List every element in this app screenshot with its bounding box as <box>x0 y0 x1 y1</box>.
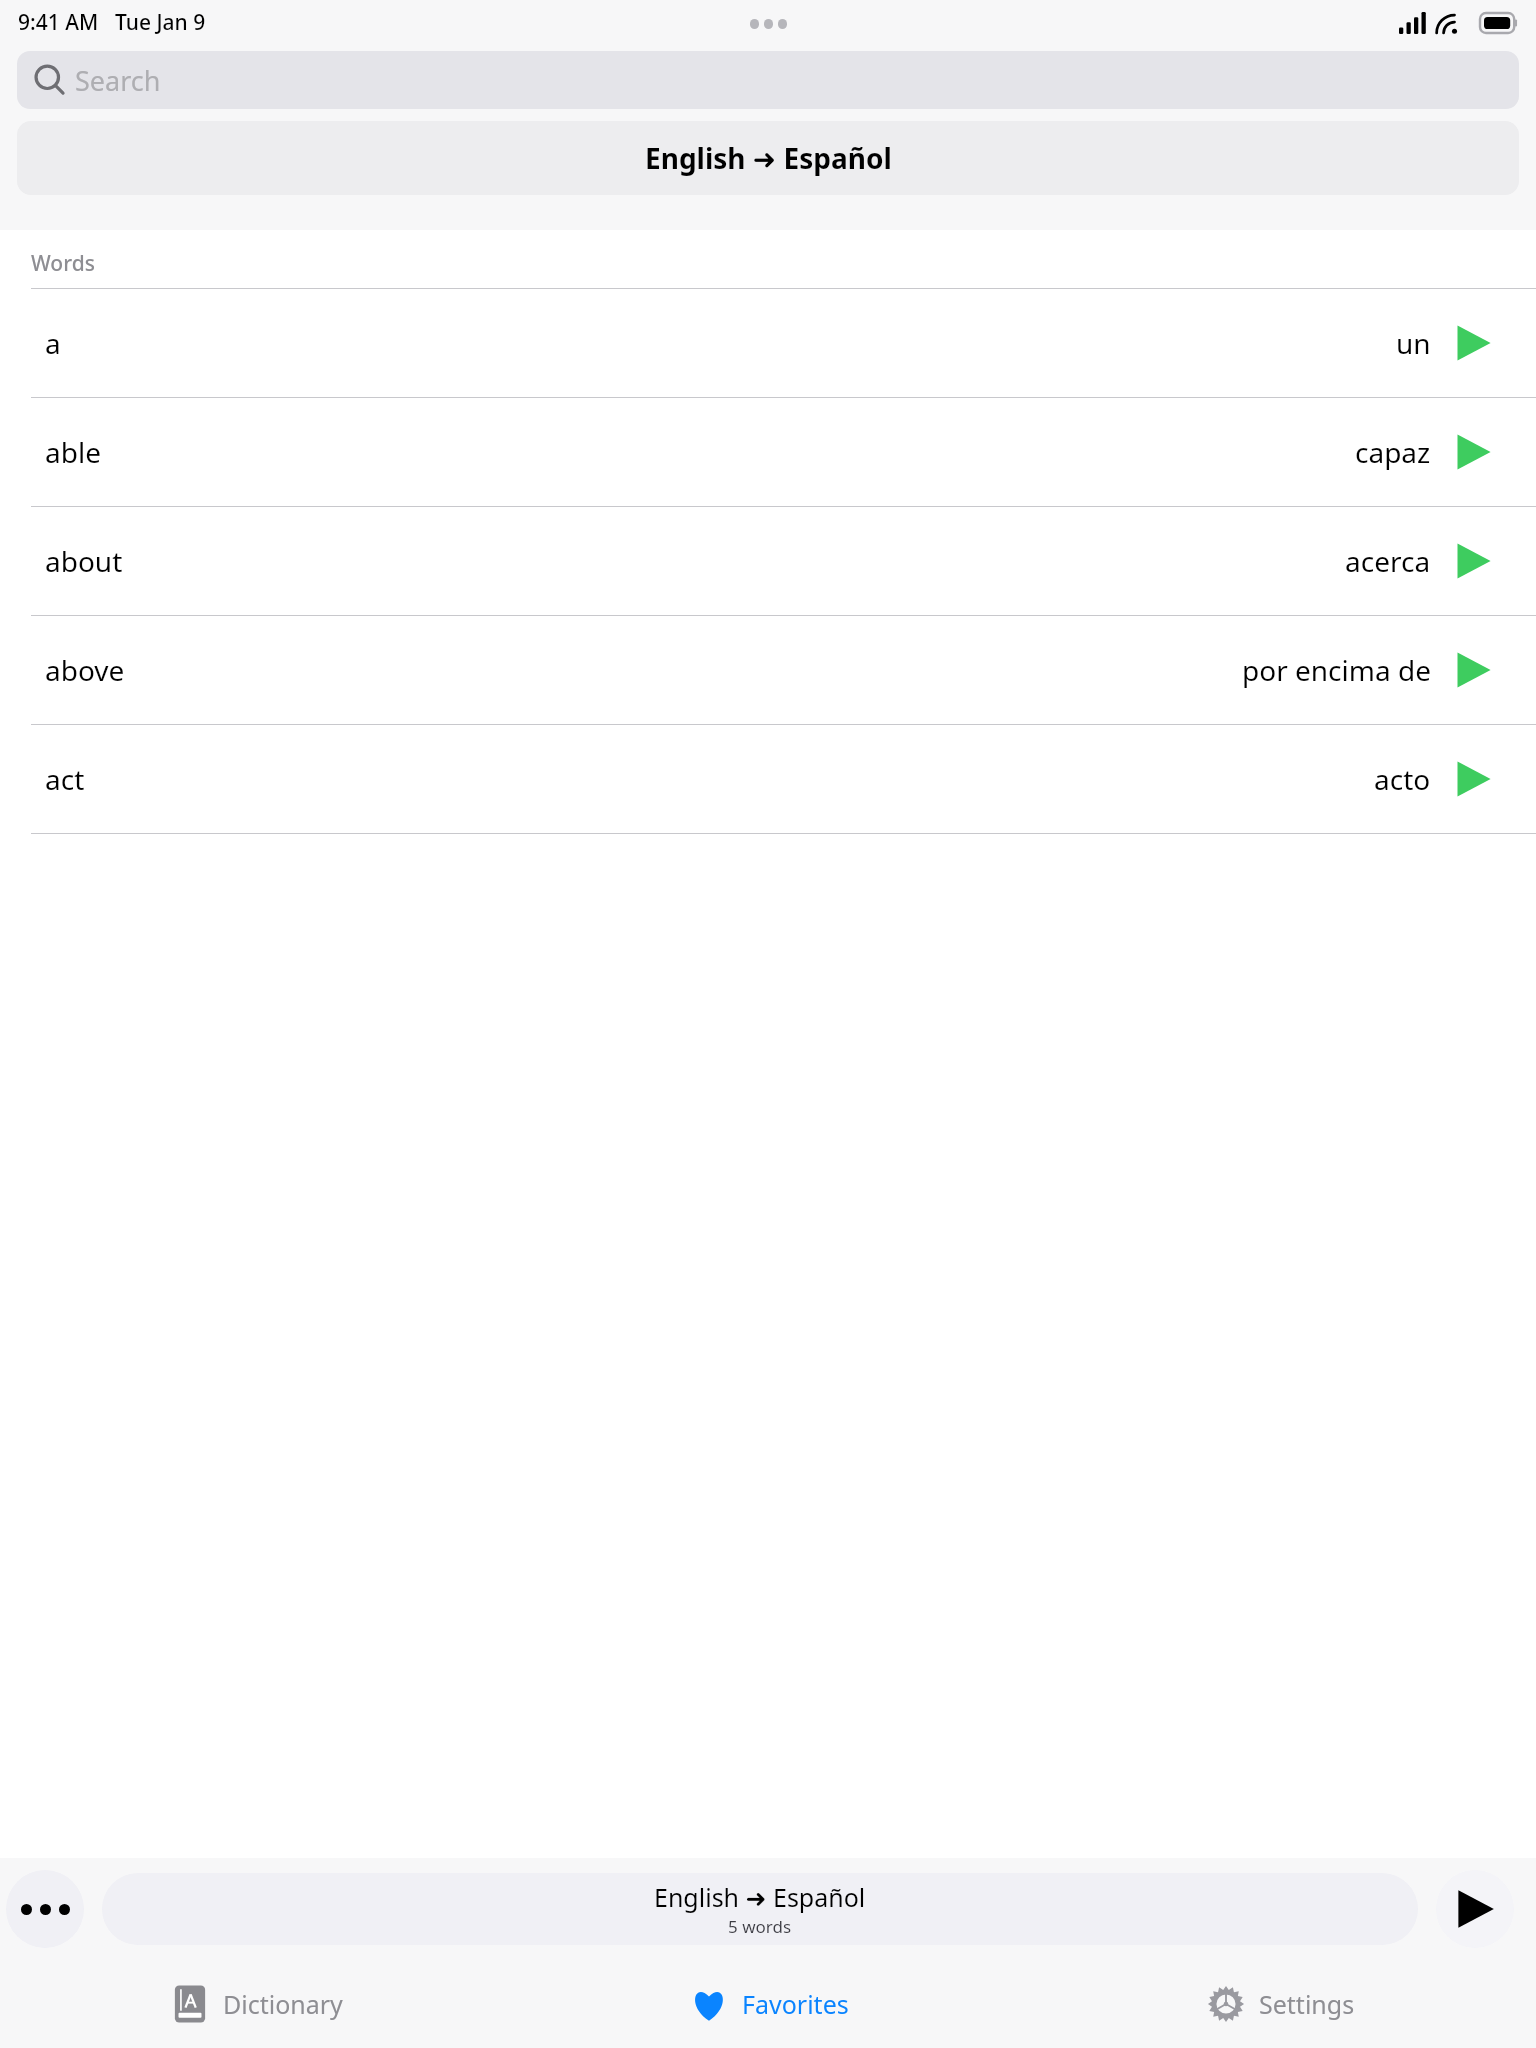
staticText: 9:41 AM <box>18 8 99 37</box>
button[interactable]: More options <box>6 1870 84 1948</box>
staticText: about <box>45 542 123 580</box>
staticText: English ➜ Español <box>654 1880 866 1914</box>
staticText: por encima de <box>1242 651 1431 689</box>
staticText: above <box>45 651 125 689</box>
button[interactable]: Play all <box>1436 1870 1514 1948</box>
staticText: 5 words <box>728 1915 792 1938</box>
staticText: capaz <box>1355 433 1431 471</box>
button[interactable]: English ➜ Español <box>17 121 1519 195</box>
button[interactable]: Dictionary <box>0 1960 512 2048</box>
staticText: Search <box>75 62 161 99</box>
button[interactable]: Play por encima de <box>1451 648 1495 692</box>
button[interactable]: Settings <box>1024 1960 1536 2048</box>
button[interactable]: Play un <box>1451 321 1495 365</box>
staticText: Favorites <box>742 1987 849 2021</box>
button[interactable]: Play acerca <box>1451 539 1495 583</box>
staticText: Words <box>31 249 95 278</box>
staticText: a <box>45 324 61 362</box>
button[interactable]: Play capaz <box>1451 430 1495 474</box>
button[interactable]: above <box>0 616 1536 724</box>
staticText: Dictionary <box>223 1987 343 2021</box>
button[interactable]: about <box>0 507 1536 615</box>
staticText: act <box>45 760 85 798</box>
staticText: able <box>45 433 101 471</box>
staticText: Settings <box>1259 1987 1355 2021</box>
staticText: English ➜ Español <box>645 139 892 177</box>
button[interactable]: Play acto <box>1451 757 1495 801</box>
staticText: acerca <box>1345 542 1431 580</box>
staticText: Tue Jan 9 <box>115 8 206 37</box>
button[interactable]: act <box>0 725 1536 833</box>
button[interactable]: English ➜ Español <box>102 1873 1418 1945</box>
staticText: acto <box>1374 760 1431 798</box>
button[interactable]: Favorites <box>512 1960 1024 2048</box>
button[interactable]: a <box>0 289 1536 397</box>
button[interactable]: Search <box>17 51 1519 109</box>
staticText: un <box>1396 324 1431 362</box>
button[interactable]: able <box>0 398 1536 506</box>
